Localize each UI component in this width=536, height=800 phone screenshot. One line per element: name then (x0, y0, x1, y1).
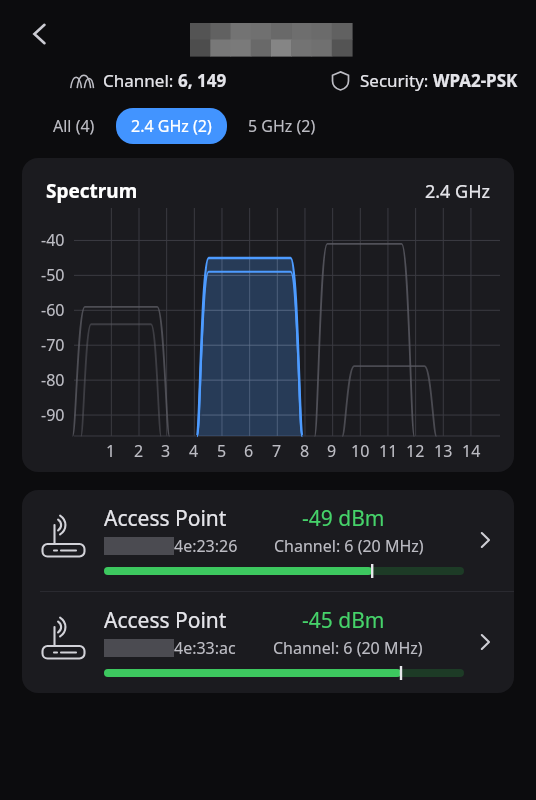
staticText: -70 (41, 334, 65, 356)
staticText: 7 (272, 440, 282, 462)
button[interactable]: All (4) (38, 108, 110, 144)
staticText: 3 (161, 440, 171, 462)
staticText: 4 (189, 440, 199, 462)
staticText: 9 (327, 440, 337, 462)
button[interactable]: 5 GHz (2) (233, 108, 331, 144)
staticText: 13 (434, 440, 453, 462)
staticText: 5 (217, 440, 227, 462)
staticText: Spectrum (46, 178, 138, 204)
button[interactable]: Access Point (22, 490, 514, 591)
staticText: 2.4 GHz (425, 179, 490, 204)
staticText: -80 (41, 369, 65, 391)
staticText: Channel: 6 (20 MHz) (274, 535, 424, 557)
staticText: Access Point (104, 504, 227, 533)
staticText: All (4) (53, 115, 95, 137)
button[interactable]: Details (470, 525, 500, 555)
staticText: 11 (379, 440, 398, 462)
staticText: 12 (406, 440, 425, 462)
staticText: -90 (41, 404, 65, 426)
button[interactable]: Access Point (22, 592, 514, 693)
button[interactable]: Back (16, 10, 64, 58)
staticText: -60 (41, 299, 65, 321)
staticText: 1 (106, 440, 116, 462)
staticText: Channel: (103, 69, 178, 92)
button[interactable]: Details (470, 627, 500, 657)
staticText: 2 (134, 440, 144, 462)
button[interactable]: 2.4 GHz (2) (116, 108, 227, 144)
staticText: 6 (244, 440, 254, 462)
staticText: 2.4 GHz (2) (131, 115, 212, 137)
staticText: Security: (360, 69, 433, 92)
staticText: -50 (41, 264, 65, 286)
staticText: Channel: 6 (20 MHz) (273, 637, 423, 659)
staticText: -49 dBm (302, 504, 385, 533)
staticText: 10 (351, 440, 370, 462)
staticText: 14 (462, 440, 481, 462)
staticText: -45 dBm (302, 606, 385, 635)
staticText: Access Point (104, 606, 227, 635)
staticText: WPA2-PSK (433, 69, 518, 92)
staticText: 8 (300, 440, 310, 462)
staticText: 6, 149 (178, 69, 227, 92)
staticText: -40 (41, 229, 65, 251)
staticText: 5 GHz (2) (248, 115, 316, 137)
staticText: 4e:23:26 (174, 535, 238, 557)
staticText: 4e:33:ac (174, 637, 236, 659)
